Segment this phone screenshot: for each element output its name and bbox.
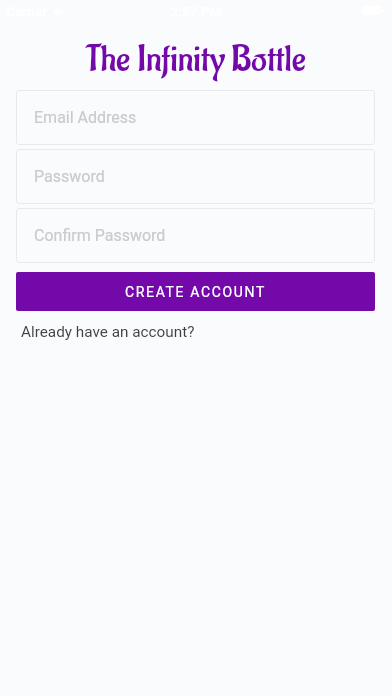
staticText: Confirm Password — [34, 226, 166, 245]
button[interactable]: Already have an account? — [21, 323, 195, 341]
staticText: Password — [34, 167, 105, 186]
staticText: The Infinity Bottle — [0, 37, 392, 84]
staticText: Email Address — [34, 108, 137, 127]
button[interactable]: Password — [16, 149, 375, 204]
button[interactable]: Email Address — [16, 90, 375, 145]
button[interactable]: Confirm Password — [16, 208, 375, 263]
staticText: CREATE ACCOUNT — [125, 284, 266, 300]
button[interactable]: CREATE ACCOUNT — [16, 272, 375, 311]
staticText: Already have an account? — [21, 323, 195, 341]
